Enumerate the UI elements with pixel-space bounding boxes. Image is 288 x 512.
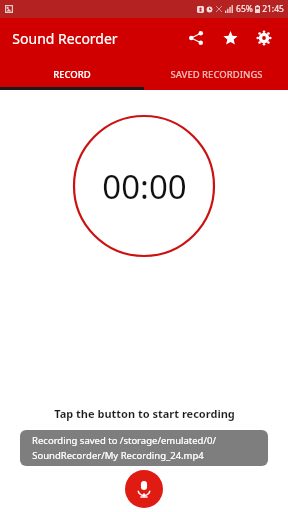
button[interactable]: Favorites — [216, 24, 244, 52]
button[interactable]: Start recording — [125, 470, 163, 508]
button[interactable]: Share — [182, 24, 210, 52]
staticText: SAVED RECORDINGS — [170, 68, 263, 81]
button[interactable]: SAVED RECORDINGS — [144, 58, 288, 90]
staticText: 00:00 — [102, 164, 187, 209]
staticText: SoundRecorder/My Recording_24.mp4 — [32, 449, 204, 462]
button[interactable]: Settings — [250, 24, 278, 52]
staticText: 21:45 — [262, 3, 284, 15]
staticText: RECORD — [53, 68, 91, 81]
button[interactable]: Recording saved to /storage/emulated/0/ — [20, 430, 268, 466]
staticText: Tap the button to start recording — [54, 406, 235, 421]
staticText: Sound Recorder — [12, 29, 118, 48]
staticText: Recording saved to /storage/emulated/0/ — [32, 434, 216, 447]
button[interactable]: RECORD — [0, 58, 144, 90]
staticText: 65% — [236, 3, 253, 15]
